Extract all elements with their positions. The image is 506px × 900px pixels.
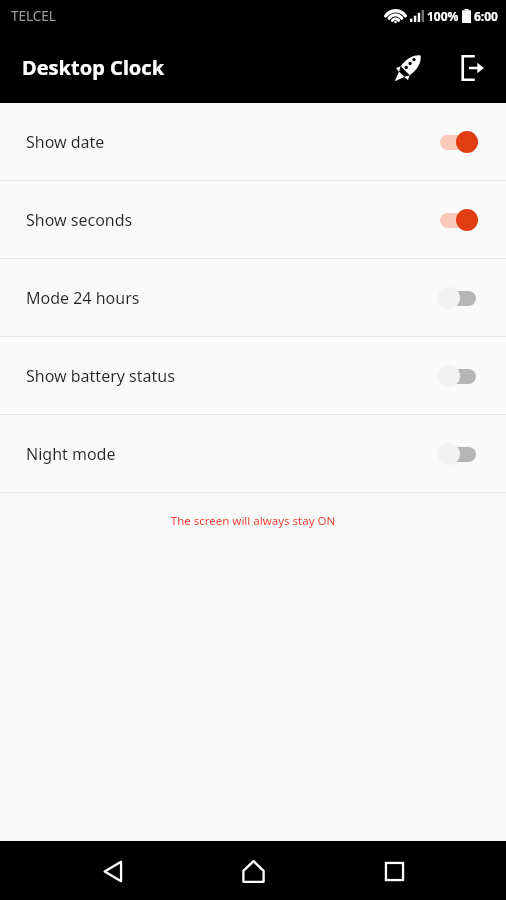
button[interactable] — [434, 127, 482, 157]
button[interactable] — [434, 205, 482, 235]
staticText: Mode 24 hours — [26, 287, 434, 309]
staticText: 100% — [427, 8, 459, 24]
button[interactable]: Recents — [366, 843, 422, 899]
staticText: Show seconds — [26, 209, 434, 231]
button[interactable]: Show date — [0, 103, 506, 180]
staticText: The screen will always stay ON — [0, 513, 506, 529]
button[interactable]: Exit — [446, 44, 494, 92]
button[interactable] — [434, 283, 482, 313]
button[interactable]: Back — [85, 843, 141, 899]
button[interactable]: Launch — [384, 44, 432, 92]
staticText: TELCEL — [11, 7, 56, 25]
button[interactable]: Show seconds — [0, 181, 506, 258]
staticText: Show date — [26, 131, 434, 153]
staticText: 6:00 — [474, 8, 498, 24]
button[interactable] — [434, 439, 482, 469]
button[interactable]: Night mode — [0, 415, 506, 492]
button[interactable] — [434, 361, 482, 391]
staticText: Night mode — [26, 443, 434, 465]
staticText: Desktop Clock — [22, 54, 165, 81]
button[interactable]: Show battery status — [0, 337, 506, 414]
button[interactable]: Mode 24 hours — [0, 259, 506, 336]
button[interactable]: Home — [225, 843, 281, 899]
staticText: Show battery status — [26, 365, 434, 387]
